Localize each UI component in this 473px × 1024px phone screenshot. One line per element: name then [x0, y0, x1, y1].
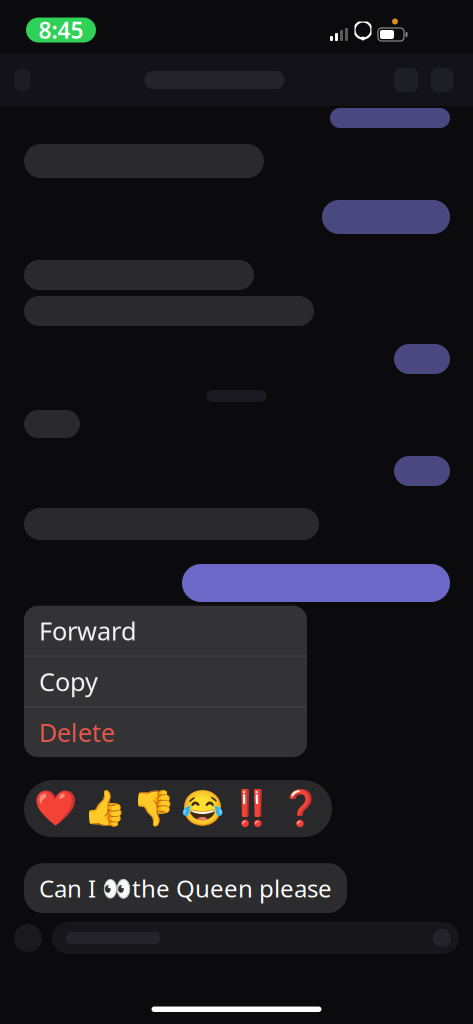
staticText: Copy [39, 665, 98, 698]
staticText: ❓ [279, 789, 322, 828]
button[interactable]: Question [276, 780, 325, 837]
button[interactable]: Forward [24, 606, 307, 656]
button[interactable]: Thumbs down [129, 780, 178, 837]
button[interactable]: Copy [24, 656, 307, 706]
button[interactable]: Love [31, 780, 80, 837]
staticText: Can I 👀the Queen please [39, 872, 332, 904]
staticText: Delete [39, 715, 115, 749]
button[interactable]: FaceTime [385, 58, 427, 102]
button[interactable]: Emphasize [227, 780, 276, 837]
staticText: 👍 [83, 789, 126, 828]
button[interactable]: Info [427, 58, 473, 102]
staticText: 😂 [181, 789, 224, 828]
staticText: Forward [39, 614, 137, 647]
button[interactable]: Thumbs up [80, 780, 129, 837]
button[interactable]: Delete [24, 707, 307, 757]
button[interactable]: Laugh [178, 780, 227, 837]
staticText: 👎 [132, 789, 175, 828]
button[interactable]: Can I 👀the Queen please [24, 863, 347, 913]
staticText: ‼️ [230, 789, 273, 828]
button[interactable]: Back [0, 59, 44, 101]
staticText: 8:45 [38, 15, 83, 45]
staticText: ❤️ [34, 789, 77, 828]
